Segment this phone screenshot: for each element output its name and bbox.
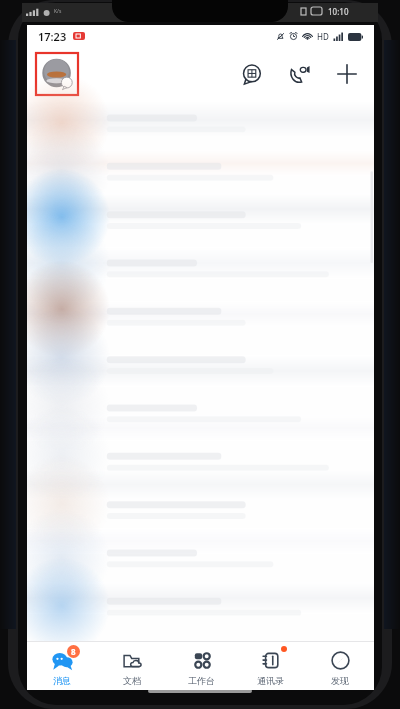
- staticText: 发现: [331, 675, 349, 686]
- button[interactable]: 文档: [97, 642, 167, 690]
- button[interactable]: 8: [27, 642, 97, 690]
- button[interactable]: 通讯录: [236, 642, 305, 690]
- staticText: HD: [317, 31, 329, 42]
- button[interactable]: Video call: [284, 59, 314, 89]
- staticText: 通讯录: [257, 675, 284, 686]
- staticText: 17:23: [38, 29, 67, 44]
- staticText: 消息: [53, 675, 71, 686]
- staticText: 文档: [123, 675, 141, 686]
- staticText: K/s: [54, 8, 62, 15]
- button[interactable]: 发现: [305, 642, 374, 690]
- button[interactable]: Profile avatar: [35, 52, 79, 96]
- button[interactable]: Scan code: [236, 59, 266, 89]
- button[interactable]: 工作台: [167, 642, 236, 690]
- button[interactable]: Add: [332, 59, 362, 89]
- staticText: 10:10: [328, 6, 349, 17]
- staticText: 工作台: [188, 675, 215, 686]
- staticText: 8: [71, 646, 76, 657]
